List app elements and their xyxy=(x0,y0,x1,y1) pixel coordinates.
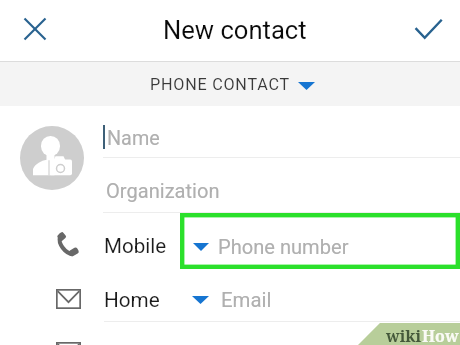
button[interactable]: Home xyxy=(100,271,214,321)
button[interactable]: Email xyxy=(48,280,88,318)
staticText: Mobile xyxy=(104,234,167,258)
button[interactable]: PHONE CONTACT xyxy=(0,62,460,106)
button[interactable]: Phone number xyxy=(214,213,460,269)
button[interactable]: Organization xyxy=(100,158,460,211)
button[interactable]: Name xyxy=(100,112,460,157)
staticText: wiki xyxy=(386,325,422,345)
button[interactable]: Close xyxy=(13,7,57,51)
staticText: Phone number xyxy=(218,235,349,259)
staticText: Email xyxy=(221,288,272,312)
staticText: PHONE CONTACT xyxy=(150,75,290,94)
button[interactable]: Mobile xyxy=(100,213,214,269)
staticText: Name xyxy=(107,127,160,150)
button[interactable]: Phone xyxy=(48,224,88,264)
button[interactable]: Add photo xyxy=(20,126,84,190)
staticText: Home xyxy=(104,288,160,312)
button[interactable]: Email xyxy=(214,271,460,321)
staticText: Organization xyxy=(106,179,220,203)
button[interactable]: Save xyxy=(406,7,450,51)
staticText: New contact xyxy=(163,15,307,45)
staticText: How xyxy=(422,325,459,345)
